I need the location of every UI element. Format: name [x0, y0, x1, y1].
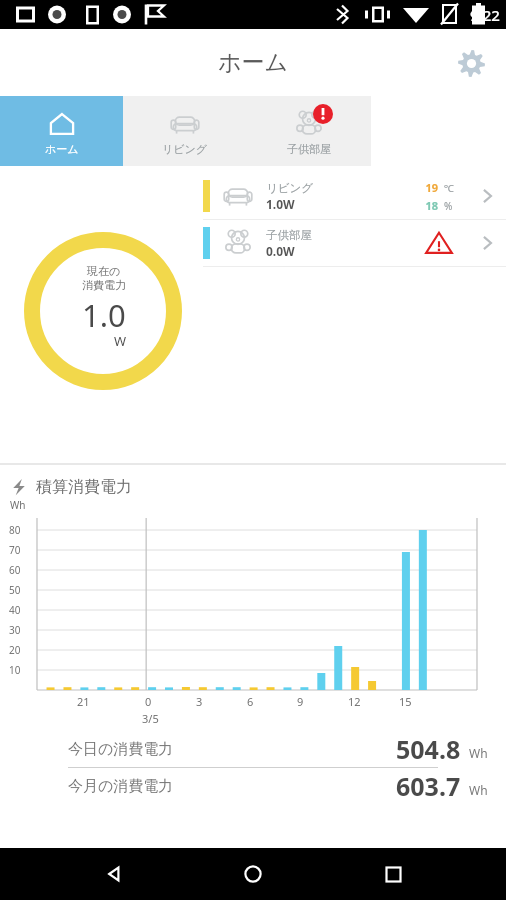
staticText: 40 — [9, 603, 21, 617]
staticText: 21 — [77, 694, 90, 709]
staticText: 50 — [9, 583, 21, 597]
staticText: 0 — [145, 694, 152, 709]
button[interactable]: 子供部屋 — [195, 220, 506, 266]
staticText: Wh — [10, 498, 26, 512]
staticText: 3 — [196, 694, 203, 709]
staticText: 積算消費電力 — [36, 477, 132, 497]
staticText: 1.0W — [266, 196, 295, 212]
staticText: 12 — [348, 694, 361, 709]
button[interactable]: 子供部屋 — [247, 96, 371, 166]
staticText: % — [444, 199, 453, 213]
staticText: 603.7 — [396, 769, 461, 803]
button[interactable]: ホーム — [0, 96, 123, 166]
staticText: 70 — [9, 543, 21, 557]
staticText: ℃ — [444, 181, 454, 195]
button[interactable]: Home — [227, 848, 279, 900]
staticText: W — [114, 332, 127, 350]
button[interactable]: リビング — [195, 173, 506, 219]
button[interactable]: Back — [88, 848, 140, 900]
staticText: 9:22 — [470, 5, 500, 25]
staticText: 18 — [418, 198, 438, 213]
staticText: ホーム — [218, 48, 289, 77]
staticText: Wh — [469, 745, 488, 761]
staticText: ホーム — [45, 142, 79, 156]
staticText: 10 — [9, 663, 21, 677]
staticText: 0.0W — [266, 243, 295, 259]
staticText: 6 — [247, 694, 254, 709]
staticText: 9 — [297, 694, 304, 709]
staticText: 1.0 — [82, 294, 126, 336]
staticText: 3/5 — [142, 711, 159, 726]
staticText: 子供部屋 — [266, 228, 312, 242]
staticText: リビング — [162, 142, 208, 156]
staticText: Wh — [469, 782, 488, 798]
staticText: リビング — [266, 181, 314, 195]
staticText: 80 — [9, 523, 21, 537]
staticText: 60 — [9, 563, 21, 577]
staticText: 現在の — [87, 264, 121, 278]
staticText: 19 — [418, 180, 438, 195]
button[interactable]: Recent apps — [367, 848, 419, 900]
staticText: 30 — [9, 623, 21, 637]
staticText: 今日の消費電力 — [68, 740, 174, 759]
button[interactable]: Settings — [448, 40, 494, 86]
staticText: 今月の消費電力 — [68, 777, 174, 796]
staticText: 15 — [399, 694, 412, 709]
button[interactable]: リビング — [123, 96, 247, 166]
staticText: 504.8 — [396, 732, 461, 766]
staticText: 子供部屋 — [287, 142, 331, 156]
staticText: 20 — [9, 643, 21, 657]
staticText: 消費電力 — [82, 278, 126, 292]
